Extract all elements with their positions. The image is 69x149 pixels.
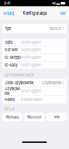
button[interactable]: Info <box>46 113 67 121</box>
staticText: SESJA <box>4 107 14 111</box>
staticText: Użytkownik <box>4 86 20 96</box>
staticText: Użytkownik <box>41 80 61 85</box>
staticText: Wymagane <box>21 55 41 60</box>
staticText: 9:41 <box>4 1 10 5</box>
staticText: Typ <box>4 26 10 31</box>
staticText: Serwer <box>4 47 18 52</box>
staticText: WOLO <box>49 26 61 31</box>
button[interactable]: OK <box>60 10 66 17</box>
staticText: Wymagane <box>21 62 41 67</box>
staticText: Info <box>54 115 60 119</box>
staticText: OK <box>60 11 66 16</box>
staticText: UŻYTKOWNIK KASY <box>4 74 33 77</box>
staticText: Wymagane <box>21 47 41 52</box>
button[interactable]: Wyloguj <box>2 113 22 121</box>
staticText: Konfiguracja <box>22 11 46 16</box>
staticText: ID sklepu <box>4 55 20 60</box>
staticText: Pokaż hasło <box>21 97 42 102</box>
button[interactable]: Wyczyść <box>24 113 45 121</box>
staticText: Opis <box>4 40 12 45</box>
staticText: Anuluj <box>3 11 14 16</box>
staticText: Wymagane <box>21 89 41 93</box>
staticText: Wyloguj <box>6 115 19 119</box>
staticText: Wyczyść <box>27 115 42 119</box>
staticText: Hasło <box>4 97 14 102</box>
button[interactable]: Lista: użytkownik <box>2 79 67 87</box>
staticText: Lista: użytkownik <box>4 80 33 85</box>
button[interactable]: Typ <box>2 24 67 33</box>
staticText: ID kasy <box>4 62 17 67</box>
staticText: Wymagane <box>21 40 41 45</box>
button[interactable]: Anuluj <box>3 10 14 17</box>
